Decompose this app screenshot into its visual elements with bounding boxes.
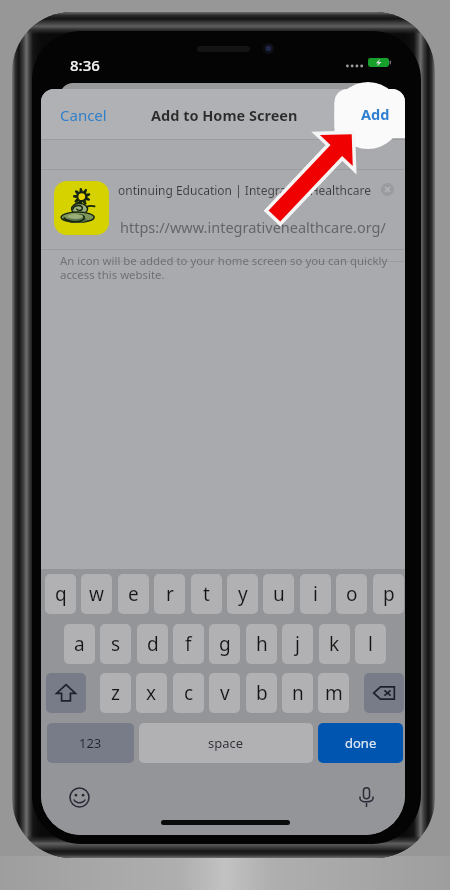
staticText: done: [345, 734, 377, 752]
staticText: 8:36: [70, 55, 100, 75]
button[interactable]: space: [139, 723, 313, 763]
button[interactable]: j: [282, 624, 313, 664]
button[interactable]: n: [282, 673, 313, 713]
button[interactable]: e: [118, 574, 149, 614]
staticText: r: [166, 581, 174, 607]
button[interactable]: l: [355, 624, 386, 664]
staticText: f: [185, 631, 192, 657]
button[interactable]: m: [318, 673, 349, 713]
button[interactable]: b: [246, 673, 277, 713]
button[interactable]: a: [64, 624, 95, 664]
staticText: z: [111, 680, 120, 706]
button[interactable]: h: [246, 624, 277, 664]
staticText: space: [208, 734, 244, 752]
staticText: x: [146, 680, 157, 706]
button[interactable]: w: [81, 574, 112, 614]
button[interactable]: done: [318, 723, 403, 763]
button[interactable]: q: [45, 574, 76, 614]
staticText: e: [128, 581, 139, 607]
staticText: g: [219, 631, 231, 657]
button[interactable]: Shift: [46, 673, 86, 713]
button[interactable]: f: [173, 624, 204, 664]
button[interactable]: r: [154, 574, 185, 614]
button[interactable]: 123: [47, 723, 134, 763]
staticText: n: [292, 680, 304, 706]
staticText: An icon will be added to your home scree…: [60, 253, 388, 282]
button[interactable]: Dictation: [353, 784, 380, 811]
staticText: i: [313, 581, 318, 607]
staticText: b: [256, 680, 268, 706]
staticText: w: [89, 581, 104, 607]
staticText: u: [273, 581, 285, 607]
button[interactable]: c: [173, 673, 204, 713]
button[interactable]: t: [191, 574, 222, 614]
staticText: m: [325, 680, 343, 706]
button[interactable]: x: [136, 673, 167, 713]
staticText: h: [256, 631, 268, 657]
staticText: k: [329, 631, 340, 657]
button[interactable]: u: [263, 574, 294, 614]
button[interactable]: s: [100, 624, 131, 664]
button[interactable]: p: [373, 574, 404, 614]
staticText: c: [184, 680, 194, 706]
staticText: a: [74, 631, 85, 657]
button[interactable]: o: [336, 574, 367, 614]
button[interactable]: Emoji keyboard: [66, 784, 93, 811]
staticText: Add: [361, 104, 390, 124]
button[interactable]: Backspace: [364, 673, 404, 713]
staticText: s: [111, 631, 121, 657]
button[interactable]: Clear text: [375, 177, 399, 201]
staticText: l: [368, 631, 373, 657]
button[interactable]: v: [209, 673, 240, 713]
staticText: q: [55, 581, 67, 607]
button[interactable]: g: [209, 624, 240, 664]
button[interactable]: z: [100, 673, 131, 713]
staticText: y: [238, 581, 248, 607]
staticText: j: [295, 631, 300, 657]
staticText: t: [203, 581, 210, 607]
staticText: 123: [79, 734, 102, 752]
staticText: d: [147, 631, 159, 657]
button[interactable]: d: [137, 624, 168, 664]
staticText: Cancel: [60, 105, 107, 125]
staticText: v: [220, 680, 230, 706]
staticText: o: [346, 581, 358, 607]
button[interactable]: Cancel: [46, 92, 120, 137]
staticText: Add to Home Screen: [151, 105, 298, 125]
button[interactable]: Add: [345, 90, 405, 138]
button[interactable]: y: [227, 574, 258, 614]
staticText: ontinuing Education | Integrative Health…: [118, 182, 371, 198]
staticText: https://www.integrativehealthcare.org/: [120, 217, 386, 237]
button[interactable]: i: [300, 574, 331, 614]
staticText: p: [383, 581, 395, 607]
button[interactable]: k: [319, 624, 350, 664]
